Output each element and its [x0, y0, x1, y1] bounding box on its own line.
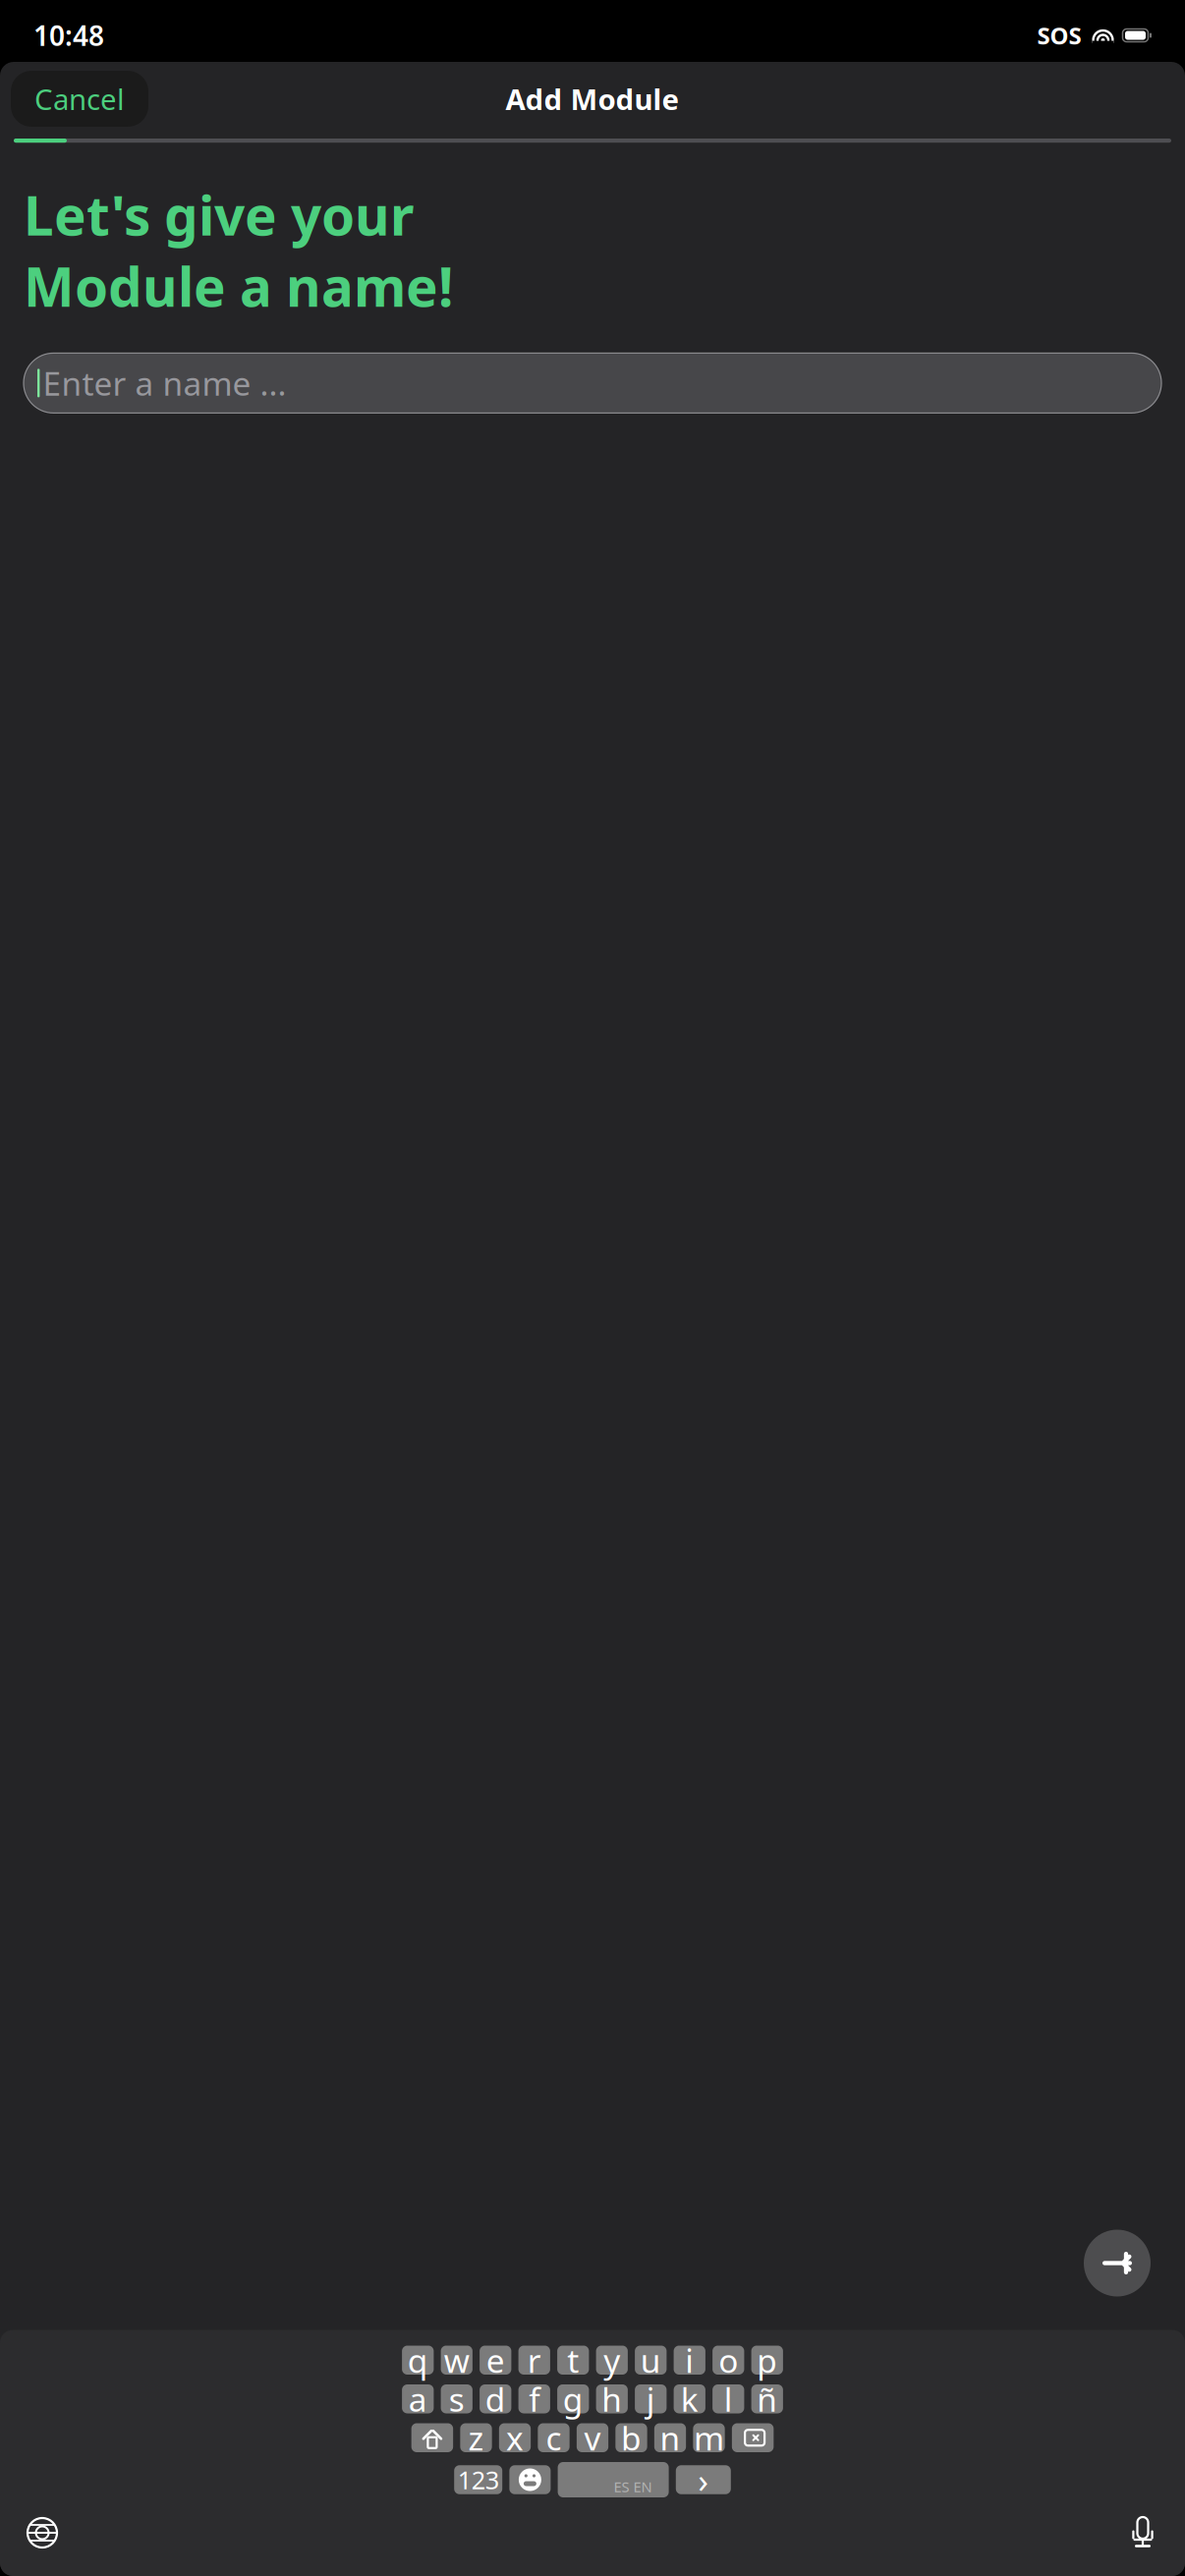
- staticText: v: [584, 2416, 601, 2459]
- button[interactable]: n: [654, 2423, 686, 2452]
- button[interactable]: Key: [411, 2423, 453, 2452]
- staticText: t: [567, 2338, 579, 2382]
- button[interactable]: m: [693, 2423, 725, 2452]
- staticText: m: [694, 2416, 724, 2459]
- staticText: k: [681, 2377, 698, 2421]
- staticText: ›: [698, 2457, 709, 2502]
- button[interactable]: Enter a name ...: [24, 353, 1161, 413]
- button[interactable]: Next keyboard: [26, 2516, 59, 2549]
- staticText: 123: [458, 2463, 499, 2496]
- button[interactable]: v: [577, 2423, 608, 2452]
- staticText: ñ: [757, 2377, 777, 2421]
- button[interactable]: h: [596, 2384, 628, 2413]
- button[interactable]: s: [441, 2384, 473, 2413]
- button[interactable]: j: [635, 2384, 667, 2413]
- staticText: q: [407, 2338, 428, 2382]
- staticText: Enter a name ...: [43, 361, 286, 405]
- button[interactable]: w: [441, 2346, 473, 2375]
- staticText: g: [563, 2377, 583, 2421]
- staticText: a: [408, 2377, 427, 2421]
- staticText: s: [449, 2377, 464, 2421]
- staticText: d: [485, 2377, 506, 2421]
- staticText: b: [621, 2416, 642, 2459]
- button[interactable]: y: [596, 2346, 628, 2375]
- button[interactable]: t: [557, 2346, 589, 2375]
- button[interactable]: c: [538, 2423, 570, 2452]
- staticText: y: [604, 2338, 620, 2382]
- staticText: f: [529, 2377, 540, 2421]
- staticText: Cancel: [34, 80, 125, 118]
- button[interactable]: Key: [732, 2423, 774, 2452]
- button[interactable]: 123: [454, 2465, 502, 2494]
- staticText: 10:48: [33, 17, 104, 54]
- button[interactable]: l: [712, 2384, 744, 2413]
- staticText: l: [724, 2377, 733, 2421]
- staticText: i: [685, 2338, 694, 2382]
- staticText: e: [486, 2338, 505, 2382]
- button[interactable]: f: [518, 2384, 550, 2413]
- staticText: p: [757, 2338, 777, 2382]
- button[interactable]: Key: [509, 2465, 551, 2494]
- button[interactable]: k: [674, 2384, 705, 2413]
- staticText: o: [718, 2338, 738, 2382]
- button[interactable]: a: [402, 2384, 434, 2413]
- button[interactable]: x: [499, 2423, 531, 2452]
- staticText: x: [506, 2416, 524, 2459]
- staticText: w: [444, 2338, 469, 2382]
- button[interactable]: ›: [676, 2465, 731, 2494]
- staticText: Add Module: [506, 80, 679, 118]
- button[interactable]: b: [615, 2423, 647, 2452]
- button[interactable]: i: [674, 2346, 705, 2375]
- staticText: z: [468, 2416, 484, 2459]
- button[interactable]: g: [557, 2384, 589, 2413]
- button[interactable]: d: [480, 2384, 511, 2413]
- button[interactable]: Next: [1084, 2230, 1151, 2296]
- staticText: SOS: [1037, 20, 1081, 51]
- staticText: Let's give your Module a name!: [24, 179, 453, 322]
- button[interactable]: Cancel: [11, 71, 148, 127]
- staticText: h: [602, 2377, 622, 2421]
- staticText: n: [660, 2416, 680, 2459]
- button[interactable]: o: [712, 2346, 744, 2375]
- staticText: r: [527, 2338, 541, 2382]
- button[interactable]: p: [751, 2346, 783, 2375]
- button[interactable]: ñ: [751, 2384, 783, 2413]
- button[interactable]: Dictate: [1126, 2515, 1159, 2550]
- button[interactable]: e: [480, 2346, 511, 2375]
- staticText: c: [546, 2416, 562, 2459]
- staticText: u: [640, 2338, 661, 2382]
- button[interactable]: q: [402, 2346, 434, 2375]
- button[interactable]: Space: [558, 2462, 669, 2497]
- button[interactable]: z: [460, 2423, 492, 2452]
- staticText: j: [646, 2377, 655, 2421]
- button[interactable]: u: [635, 2346, 667, 2375]
- button[interactable]: r: [518, 2346, 550, 2375]
- staticText: ES EN: [614, 2477, 652, 2496]
